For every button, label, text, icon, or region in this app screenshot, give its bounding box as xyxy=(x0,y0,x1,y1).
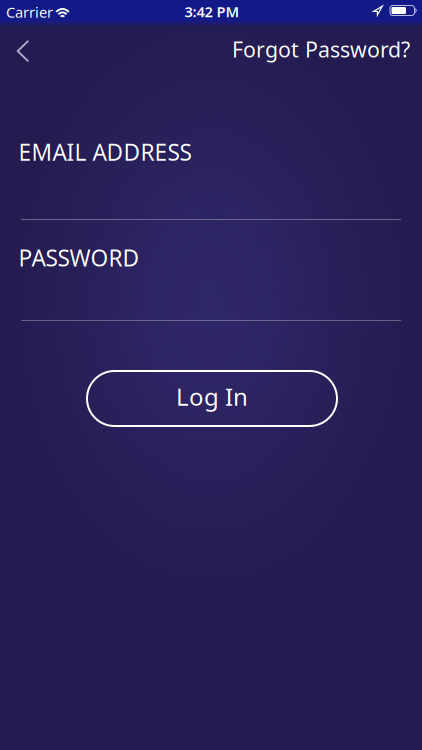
staticText: 3:42 PM xyxy=(184,2,239,21)
button[interactable]: EMAIL ADDRESS xyxy=(21,139,401,220)
staticText: PASSWORD xyxy=(18,243,139,273)
staticText: Carrier xyxy=(6,2,53,22)
staticText: EMAIL ADDRESS xyxy=(18,137,191,167)
staticText: Forgot Password? xyxy=(232,35,410,63)
button[interactable]: Log In xyxy=(87,371,337,426)
staticText: Log In xyxy=(176,381,248,412)
button[interactable]: Back xyxy=(11,34,36,68)
button[interactable]: Forgot Password? xyxy=(232,35,410,63)
button[interactable]: PASSWORD xyxy=(21,244,401,321)
